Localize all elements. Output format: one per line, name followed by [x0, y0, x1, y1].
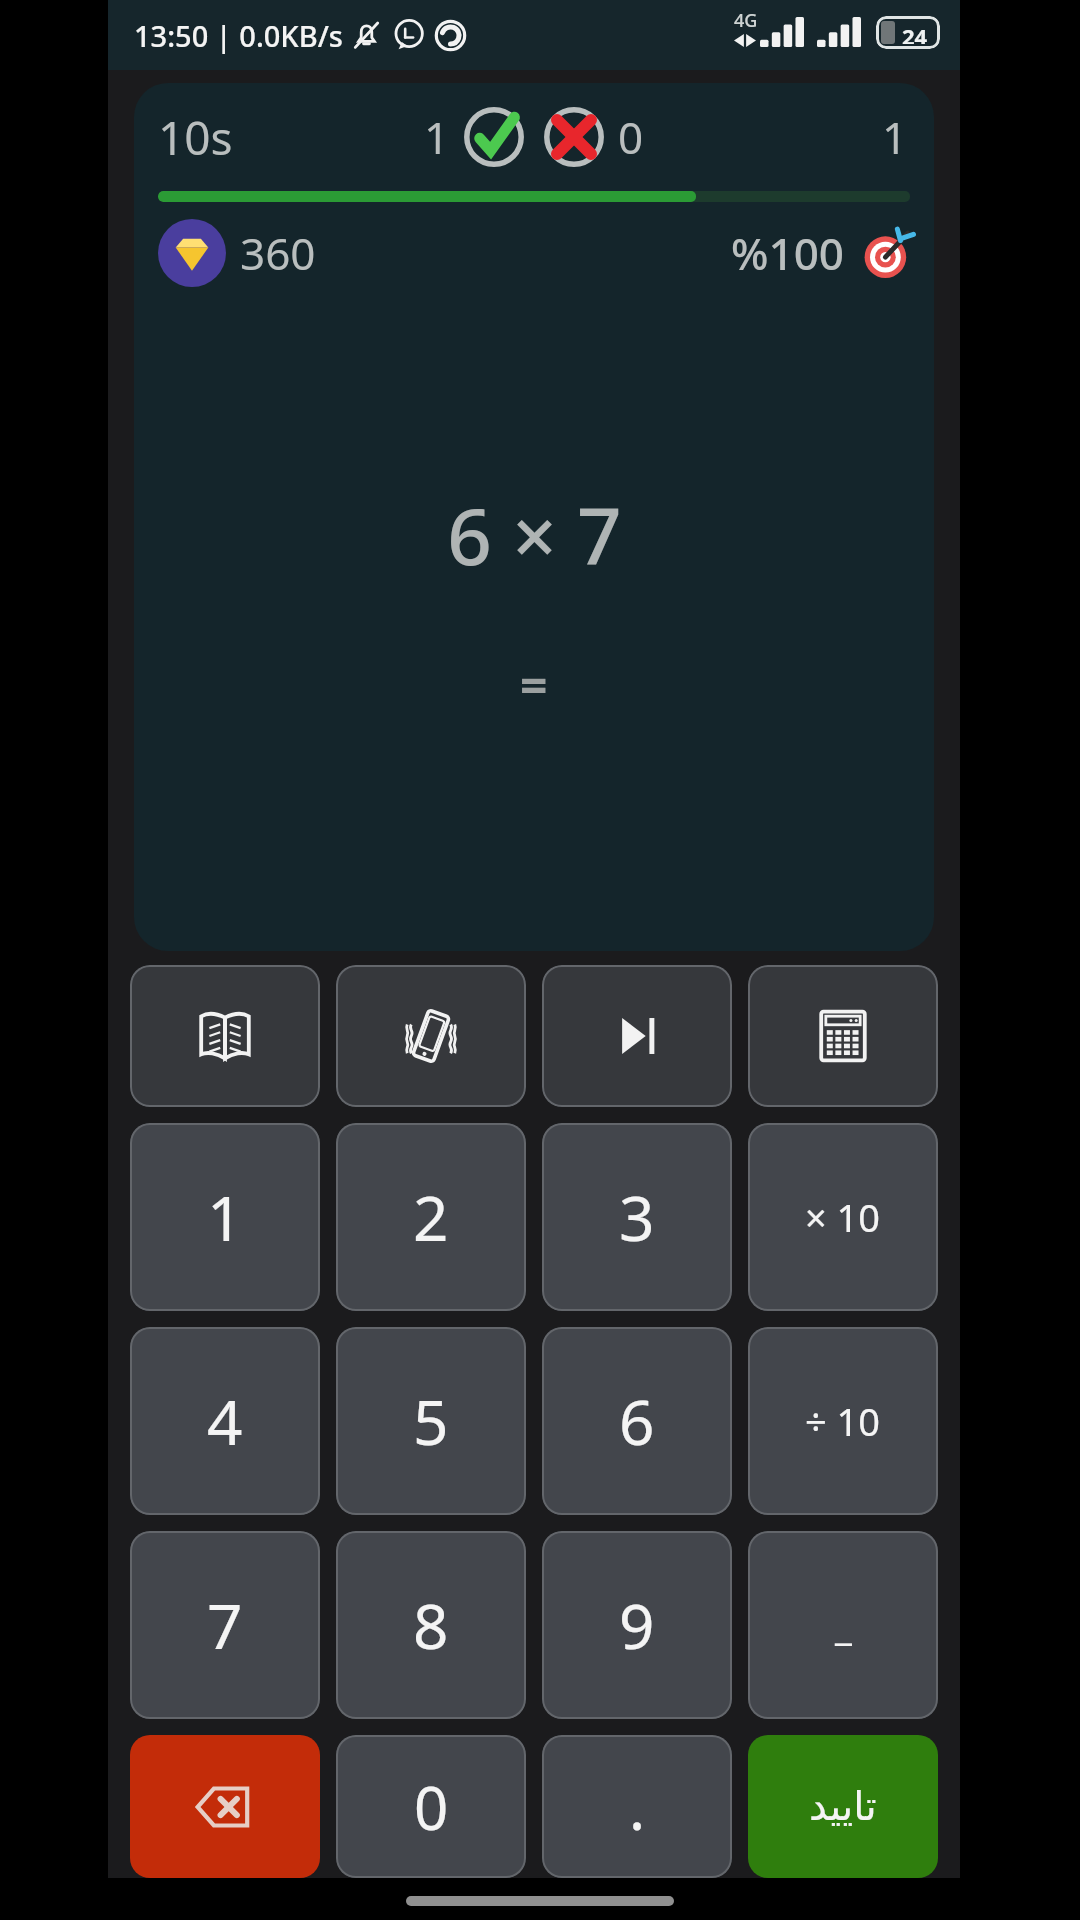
button[interactable]: Vibrate	[336, 965, 526, 1107]
button[interactable]: 1	[130, 1123, 320, 1311]
staticText: %100	[731, 223, 844, 283]
staticText: .	[629, 1766, 646, 1848]
staticText: 1	[882, 107, 908, 167]
button[interactable]: _	[748, 1531, 938, 1719]
staticText: 1	[207, 1175, 243, 1259]
button[interactable]: ÷ 10	[748, 1327, 938, 1515]
staticText: 6 × 7	[447, 482, 622, 588]
staticText: 6	[619, 1379, 655, 1463]
staticText: 4G	[734, 8, 758, 33]
staticText: 10s	[158, 106, 233, 169]
button[interactable]: 2	[336, 1123, 526, 1311]
button[interactable]: 0	[336, 1735, 526, 1878]
staticText: 2	[413, 1175, 449, 1259]
staticText: × 10	[805, 1191, 881, 1243]
staticText: =	[520, 652, 548, 717]
button[interactable]: .	[542, 1735, 732, 1878]
button[interactable]: 3	[542, 1123, 732, 1311]
button[interactable]: × 10	[748, 1123, 938, 1311]
button[interactable]: Backspace	[130, 1735, 320, 1878]
staticText: 9	[619, 1583, 655, 1667]
staticText: 0	[618, 107, 644, 167]
staticText: 7	[207, 1583, 243, 1667]
staticText: 4	[207, 1379, 243, 1463]
button[interactable]: 8	[336, 1531, 526, 1719]
button[interactable]: 6	[542, 1327, 732, 1515]
staticText: 3	[619, 1175, 655, 1259]
button[interactable]: 7	[130, 1531, 320, 1719]
staticText: _	[835, 1599, 852, 1651]
button[interactable]: Skip	[542, 965, 732, 1107]
staticText: 0	[414, 1766, 449, 1848]
staticText: 8	[413, 1583, 449, 1667]
staticText: تایید	[809, 1783, 877, 1830]
button[interactable]: 4	[130, 1327, 320, 1515]
button[interactable]: Calculator	[748, 965, 938, 1107]
staticText: 1	[424, 107, 450, 167]
staticText: 13:50 | 0.0KB/s	[134, 16, 343, 55]
button[interactable]: 5	[336, 1327, 526, 1515]
staticText: 24	[902, 21, 928, 44]
button[interactable]: 9	[542, 1531, 732, 1719]
button[interactable]: Book	[130, 965, 320, 1107]
button[interactable]: تایید	[748, 1735, 938, 1878]
staticText: 360	[240, 223, 316, 283]
staticText: 5	[413, 1379, 449, 1463]
staticText: ÷ 10	[805, 1395, 881, 1447]
